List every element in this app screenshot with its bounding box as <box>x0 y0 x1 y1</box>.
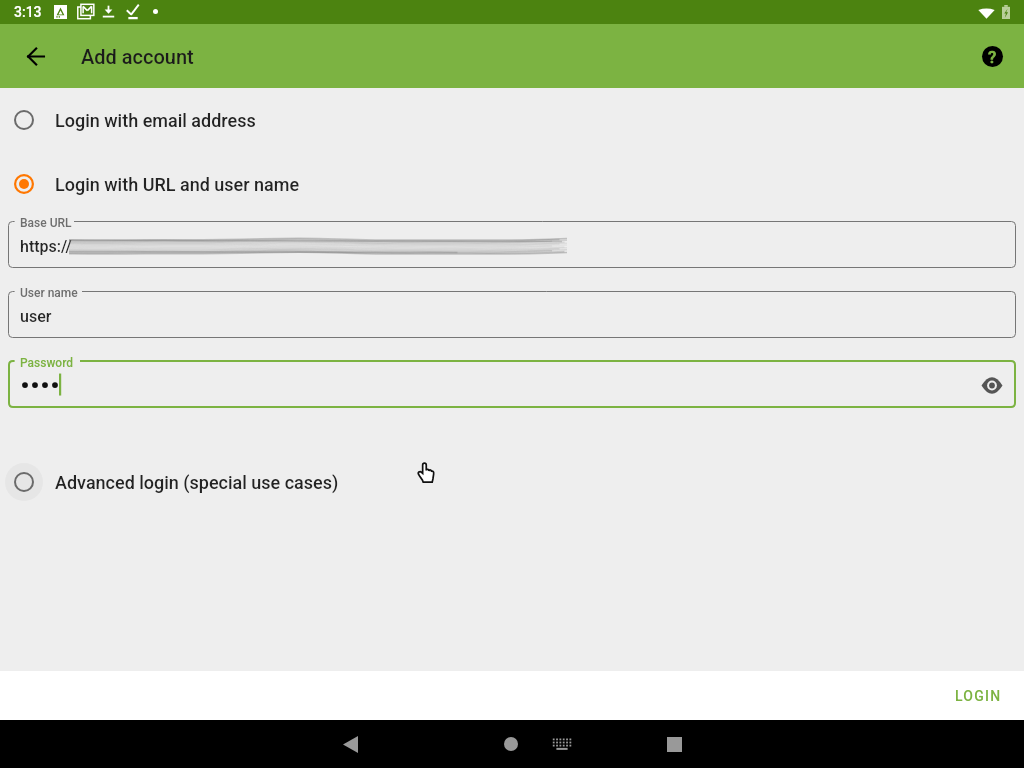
button[interactable]: Login with URL and user name <box>0 160 1024 208</box>
button[interactable]: Help <box>968 32 1016 80</box>
staticText: ? <box>988 47 997 67</box>
staticText: Password <box>20 356 74 370</box>
staticText: User name <box>20 286 78 300</box>
staticText: Base URL <box>20 216 72 230</box>
button[interactable]: Home <box>491 724 531 764</box>
button[interactable]: Base URL <box>8 213 1016 268</box>
staticText: Advanced login (special use cases) <box>55 472 339 493</box>
button[interactable]: Password <box>8 353 1016 408</box>
staticText: Add account <box>81 45 194 68</box>
button[interactable]: Switch keyboard <box>542 724 582 764</box>
staticText: Login with URL and user name <box>55 174 300 195</box>
staticText: https:// <box>20 237 72 256</box>
staticText: LOGIN <box>955 688 1002 704</box>
staticText: Login with email address <box>55 110 256 131</box>
staticText: user <box>20 307 52 326</box>
button[interactable]: Show password <box>972 365 1012 405</box>
staticText: 3:13 <box>14 4 42 20</box>
button[interactable]: LOGIN <box>943 679 1014 713</box>
button[interactable]: Advanced login (special use cases) <box>0 458 1024 506</box>
button[interactable]: Back <box>330 724 370 764</box>
button[interactable]: Navigate up <box>12 32 60 80</box>
button[interactable]: Recent apps <box>654 724 694 764</box>
button[interactable]: Login with email address <box>0 96 1024 144</box>
button[interactable]: User name <box>8 283 1016 338</box>
